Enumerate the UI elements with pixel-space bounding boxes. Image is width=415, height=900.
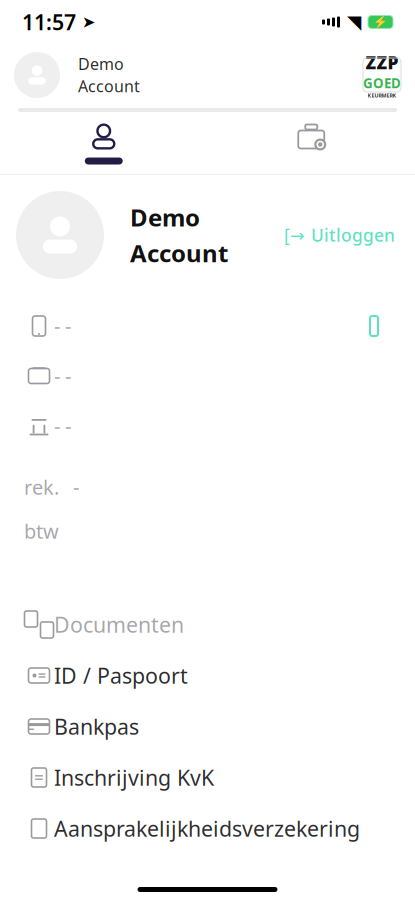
staticText: ID / Paspoort xyxy=(54,661,188,690)
staticText: - - xyxy=(54,363,71,389)
staticText: GOED xyxy=(363,74,401,92)
staticText: rek. xyxy=(24,474,59,500)
staticText: Documenten xyxy=(54,610,184,639)
button[interactable]: Opdrachten xyxy=(207,114,415,172)
button[interactable]: ID / Paspoort xyxy=(24,650,391,701)
button[interactable]: Bewerken xyxy=(357,314,391,338)
staticText: Demo xyxy=(78,53,124,74)
staticText: Aansprakelijkheidsverzekering xyxy=(54,814,360,843)
button[interactable]: Bankpas xyxy=(24,701,391,752)
staticText: ZZP xyxy=(365,51,398,74)
staticText: - xyxy=(73,474,79,500)
staticText: Account xyxy=(78,75,140,97)
button[interactable]: Demo xyxy=(14,52,140,98)
staticText: Inschrijving KvK xyxy=(54,763,214,792)
button[interactable]: [→ xyxy=(284,217,395,252)
button[interactable]: Profiel xyxy=(0,114,207,172)
button[interactable]: Aansprakelijkheidsverzekering xyxy=(24,803,391,854)
staticText: - - xyxy=(54,313,71,339)
staticText: ◥ xyxy=(347,11,361,33)
staticText: [→ xyxy=(284,223,305,246)
staticText: - - xyxy=(54,413,71,439)
staticText: Account xyxy=(130,237,228,269)
staticText: ➤ xyxy=(76,13,95,31)
staticText: Demo xyxy=(130,201,200,233)
staticText: 11:57 xyxy=(22,8,76,36)
staticText: ⚡ xyxy=(373,15,388,29)
button[interactable]: Inschrijving KvK xyxy=(24,752,391,803)
button[interactable]: Documenten xyxy=(24,599,391,650)
staticText: btw xyxy=(24,518,59,544)
staticText: Uitloggen xyxy=(311,223,395,246)
staticText: KEURMERK xyxy=(367,92,396,99)
staticText: Bankpas xyxy=(54,712,139,741)
